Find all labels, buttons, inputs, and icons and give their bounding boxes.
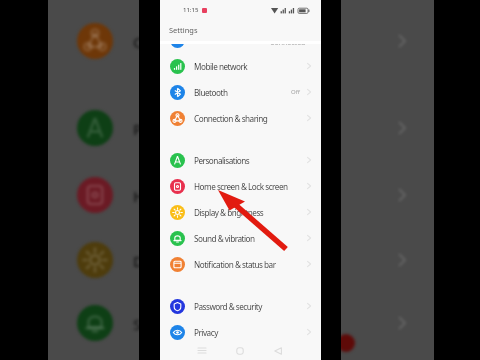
button[interactable]: Sound & vibration — [160, 225, 321, 251]
button[interactable]: Connection & sharing — [160, 105, 321, 131]
button[interactable]: Notification & status bar — [160, 251, 321, 277]
staticText: P — [133, 119, 143, 139]
staticText: Sound & vibration — [194, 233, 255, 244]
staticText: Mobile network — [194, 61, 248, 72]
button[interactable]: Privacy — [160, 319, 321, 345]
button[interactable]: Bluetooth — [160, 79, 321, 105]
staticText: Notification & status bar — [194, 259, 276, 270]
button[interactable]: Back — [268, 341, 288, 360]
button[interactable]: Recent apps — [192, 341, 212, 360]
staticText: 11:15 — [183, 6, 199, 14]
staticText: Password & security — [194, 301, 262, 312]
staticText: D — [133, 251, 144, 271]
button[interactable]: Home — [230, 341, 250, 360]
staticText: Off — [291, 88, 300, 96]
staticText: Personalisations — [194, 155, 250, 166]
staticText: Bluetooth — [194, 87, 228, 98]
staticText: Privacy — [194, 327, 218, 338]
staticText: C — [133, 32, 143, 52]
staticText: Settings — [169, 25, 198, 35]
button[interactable]: Password & security — [160, 293, 321, 319]
staticText: Home screen & Lock screen — [194, 181, 288, 192]
button[interactable]: Home screen & Lock screen — [160, 173, 321, 199]
button[interactable]: Mobile network — [160, 53, 321, 79]
staticText: H — [133, 186, 145, 206]
staticText: Display & brightness — [194, 207, 264, 218]
button[interactable]: Display & brightness — [160, 199, 321, 225]
staticText: Connection & sharing — [194, 113, 268, 124]
staticText: S — [133, 314, 142, 334]
staticText: Connected — [270, 38, 306, 48]
button[interactable]: Personalisations — [160, 147, 321, 173]
